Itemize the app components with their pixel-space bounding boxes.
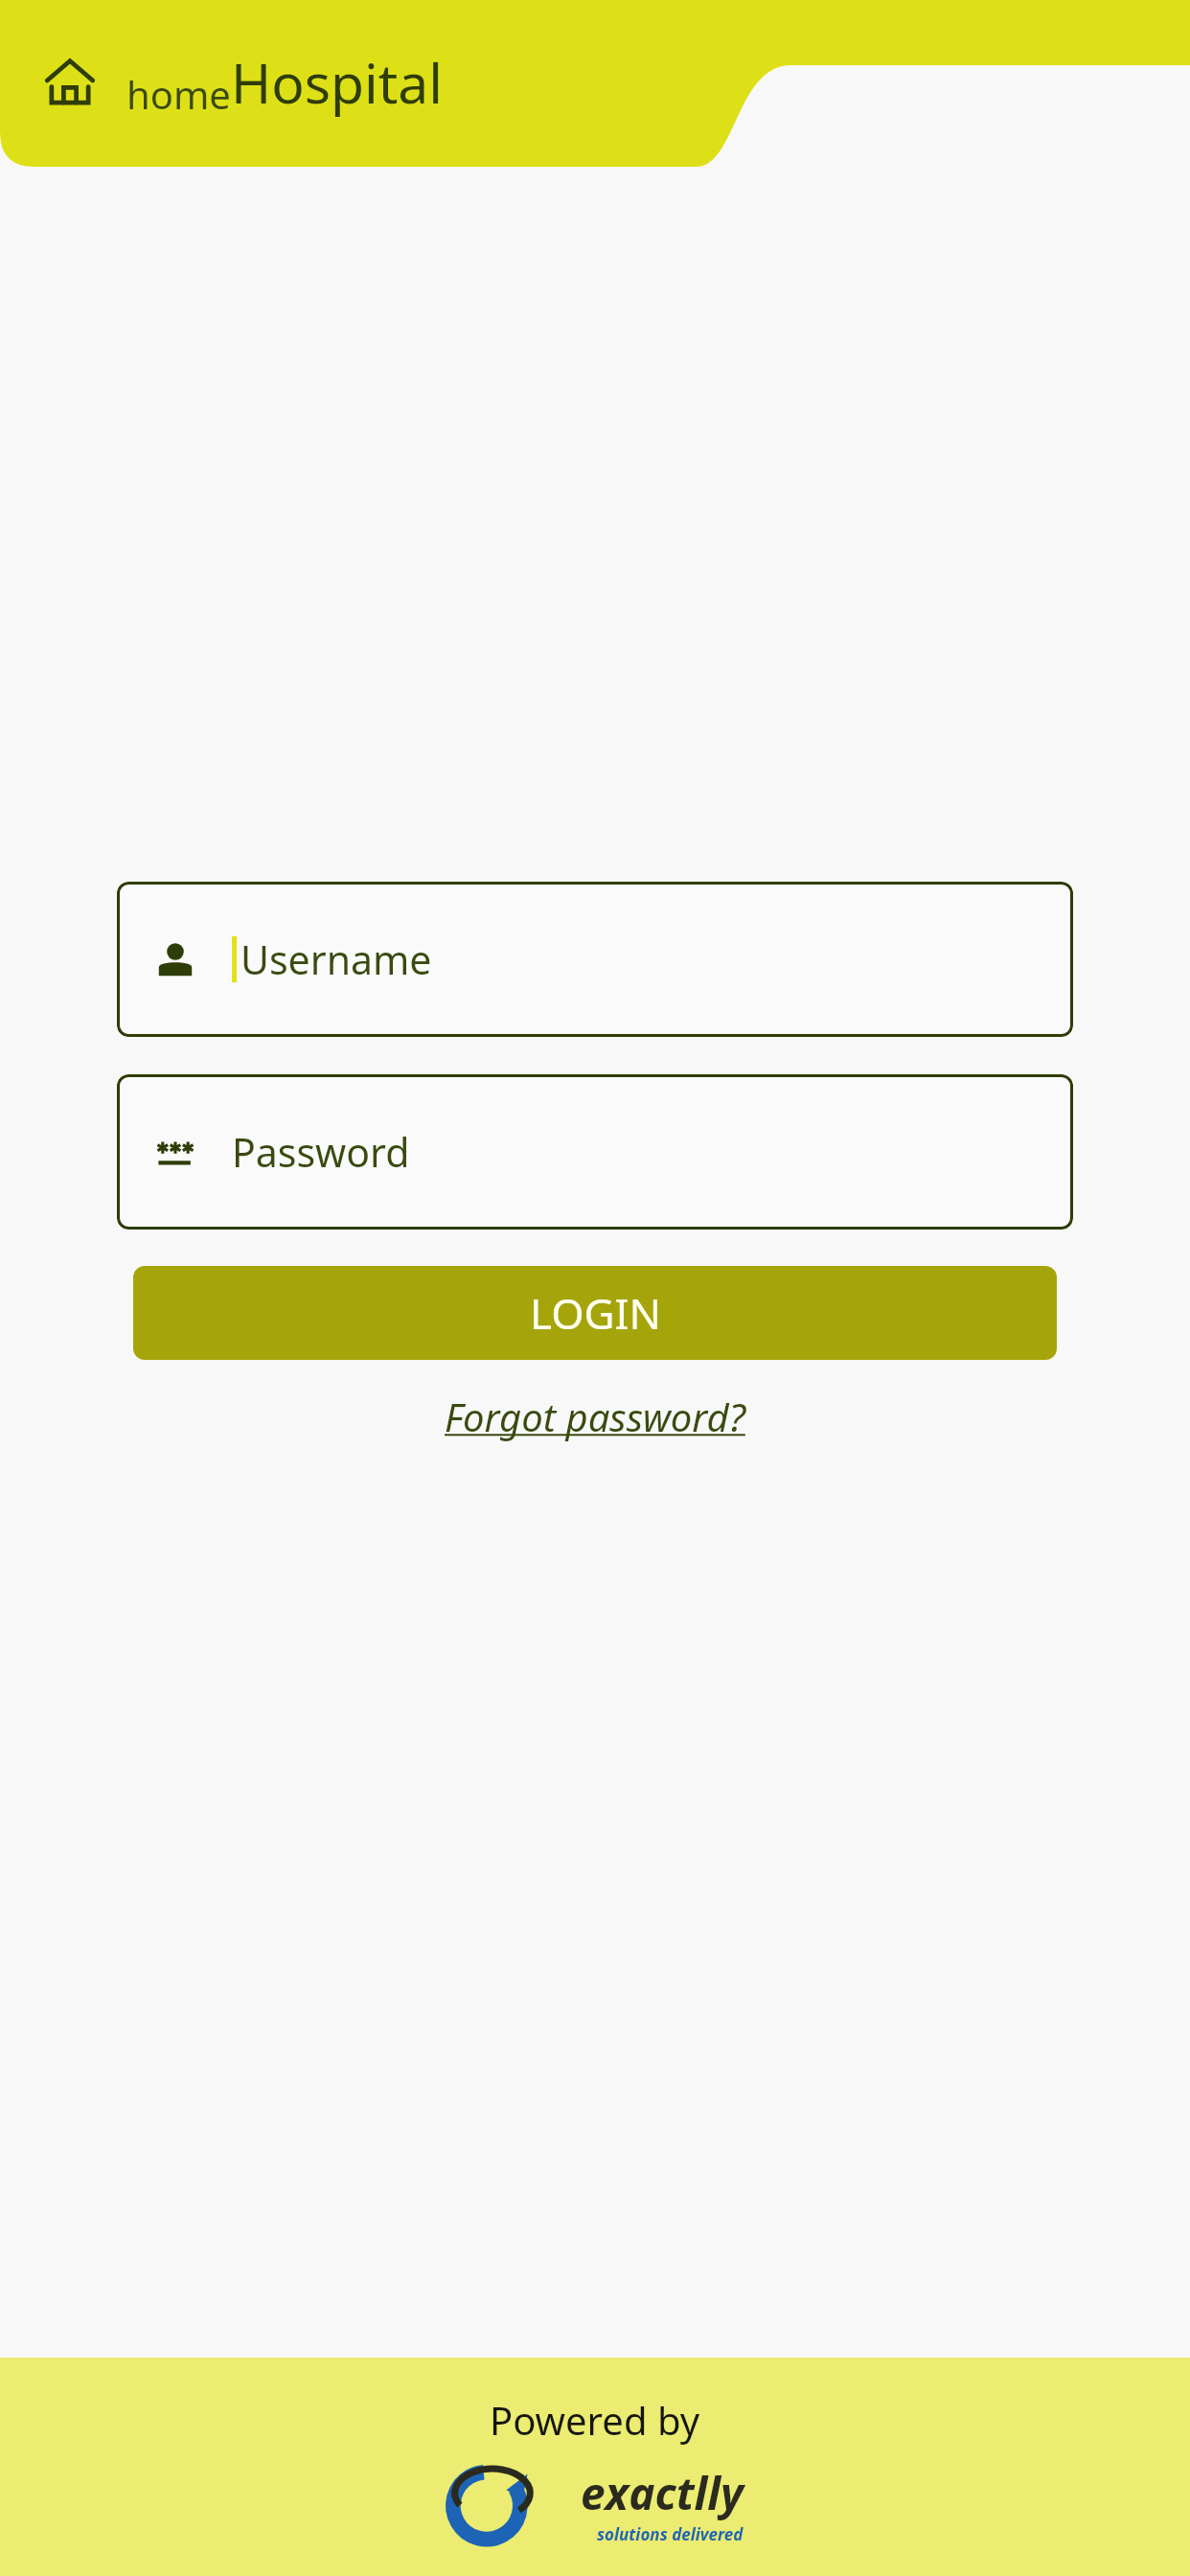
staticText: LOGIN <box>530 1284 661 1342</box>
staticText: Powered by <box>490 2394 700 2446</box>
staticText: Forgot password? <box>445 1391 745 1442</box>
button[interactable]: Password <box>117 1074 1073 1230</box>
staticText: Password <box>232 1125 410 1179</box>
button[interactable]: LOGIN <box>133 1266 1057 1360</box>
staticText: home <box>126 68 231 120</box>
staticText: exactlly <box>581 2463 744 2523</box>
button[interactable]: Forgot password? <box>437 1385 753 1448</box>
staticText: Hospital <box>231 45 444 120</box>
button[interactable]: Home <box>38 51 102 114</box>
button[interactable]: Username <box>117 882 1073 1037</box>
staticText: Username <box>240 932 432 986</box>
staticText: solutions delivered <box>597 2523 744 2545</box>
